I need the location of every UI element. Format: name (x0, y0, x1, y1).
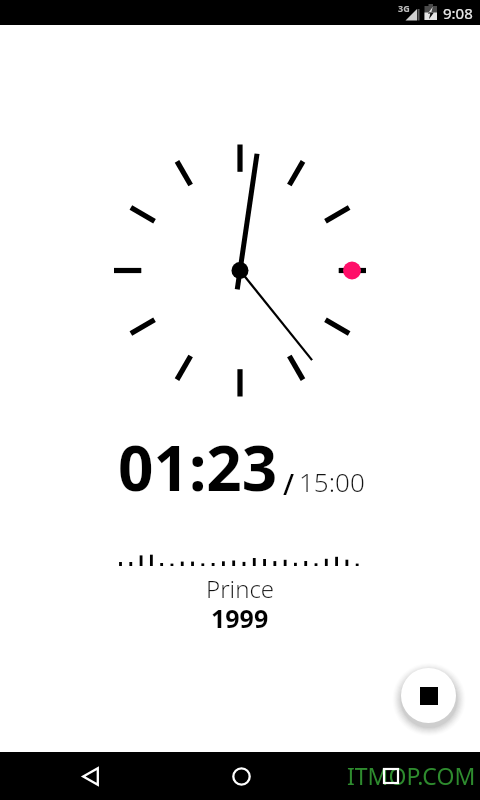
staticText: / (283, 464, 295, 503)
button[interactable]: Stop (401, 668, 456, 723)
staticText: 9:08 (443, 3, 473, 23)
button[interactable]: Back (60, 752, 120, 800)
staticText: 1999 (211, 601, 269, 635)
staticText: 15:00 (299, 464, 365, 499)
staticText: ITMOP.COM (347, 760, 476, 791)
button[interactable]: Home (211, 752, 271, 800)
button[interactable]: Recent apps (361, 752, 421, 800)
staticText: Prince (206, 572, 275, 605)
staticText: 3G (398, 2, 410, 14)
staticText: 01:23 (118, 425, 278, 509)
